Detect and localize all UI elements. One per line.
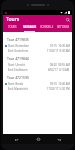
staticText: 09:10 10:40 AM	[50, 82, 70, 86]
button[interactable]: SETTINGS	[55, 24, 72, 32]
staticText: End: Eindhoven	[8, 68, 48, 72]
staticText: Tour 4719844	[7, 56, 29, 61]
staticText: 8/02/17 4:10 AM	[48, 68, 70, 72]
staticText: Tours	[6, 16, 20, 23]
staticText: Start: Utrecht	[8, 63, 50, 67]
staticText: SETTINGS	[57, 25, 70, 29]
staticText: 11/02/17 8:30 AM	[47, 49, 70, 53]
button[interactable]: TOURS	[3, 24, 21, 32]
staticText: Tour 4721590	[7, 75, 29, 80]
staticText: End: Gorinchem	[8, 49, 47, 53]
button[interactable]: Home	[32, 134, 44, 144]
staticText: Start: Breda	[8, 82, 50, 86]
staticText: 17/02/17 5:20 PM	[47, 87, 70, 91]
button[interactable]: Tour 4719844	[3, 54, 72, 73]
button[interactable]: Recent apps	[53, 134, 65, 144]
button[interactable]: Search	[64, 16, 72, 24]
button[interactable]: Back	[10, 134, 22, 144]
button[interactable]: MESSAGES	[21, 24, 38, 32]
staticText: End: Maastricht	[8, 87, 47, 91]
staticText: MESSAGES	[23, 25, 37, 29]
button[interactable]: SCHEDULE	[38, 24, 55, 32]
button[interactable]: Tour 4719835	[3, 35, 72, 54]
staticText: SCHEDULE	[40, 25, 54, 29]
button[interactable]: Tour 4721590	[3, 73, 72, 92]
staticText: Tour 4719835	[7, 37, 29, 42]
staticText: 07:15 10:30 AM	[50, 44, 70, 48]
staticText: Start: Rotterdam	[8, 44, 50, 48]
staticText: 08:20 09:55 AM	[50, 63, 70, 67]
staticText: TOURS	[8, 25, 17, 29]
